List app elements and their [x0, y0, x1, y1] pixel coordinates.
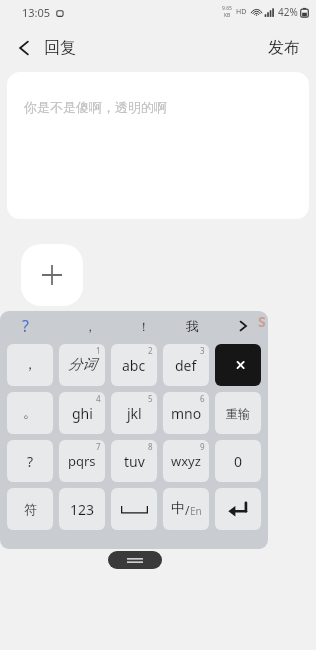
button[interactable]: 分词 — [59, 344, 105, 386]
button[interactable]: Backspace — [215, 344, 261, 386]
button[interactable]: 中 — [163, 488, 209, 530]
staticText: 我 — [186, 318, 199, 334]
button[interactable]: abc — [111, 344, 157, 386]
button[interactable]: ? — [22, 315, 29, 337]
staticText: 3 — [200, 345, 205, 356]
staticText: ? — [27, 452, 34, 471]
staticText: ? — [22, 315, 29, 337]
staticText: 123 — [70, 500, 95, 519]
button[interactable]: wxyz — [163, 440, 209, 482]
button[interactable]: 重输 — [215, 392, 261, 434]
button[interactable]: Back — [0, 30, 90, 66]
button[interactable]: Space — [111, 488, 157, 530]
button[interactable]: ghi — [59, 392, 105, 434]
staticText: S — [258, 312, 266, 331]
button[interactable]: 0 — [215, 440, 261, 482]
button[interactable]: 你是不是傻啊，透明的啊 — [7, 72, 309, 219]
button[interactable]: 符 — [7, 488, 53, 530]
staticText: ghi — [72, 404, 93, 423]
button[interactable]: Add attachment — [21, 244, 83, 306]
staticText: 6 — [200, 393, 205, 404]
staticText: 8 — [148, 441, 153, 452]
staticText: wxyz — [171, 452, 201, 470]
staticText: 1 — [96, 345, 101, 356]
staticText: def — [175, 356, 197, 375]
button[interactable]: More candidates — [236, 319, 250, 333]
staticText: 7 — [96, 441, 101, 452]
staticText: 重输 — [226, 406, 250, 421]
staticText: 9 — [200, 441, 205, 452]
staticText: 2 — [148, 345, 153, 356]
staticText: 4 — [96, 393, 101, 404]
staticText: 42% — [278, 5, 298, 19]
button[interactable]: 。 — [7, 392, 53, 434]
button[interactable]: mno — [163, 392, 209, 434]
staticText: abc — [122, 356, 146, 375]
button[interactable]: ， — [84, 319, 96, 334]
button[interactable]: ? — [7, 440, 53, 482]
staticText: 。 — [23, 404, 37, 422]
staticText: jkl — [127, 404, 142, 423]
button[interactable]: Enter — [215, 488, 261, 530]
staticText: mno — [171, 404, 202, 423]
button[interactable]: tuv — [111, 440, 157, 482]
staticText: 符 — [24, 501, 37, 517]
other: Back — [16, 40, 32, 56]
button[interactable]: ！ — [138, 319, 150, 334]
staticText: HD — [236, 7, 247, 17]
button[interactable]: pqrs — [59, 440, 105, 482]
button[interactable]: def — [163, 344, 209, 386]
staticText: 5 — [148, 393, 153, 404]
button[interactable]: jkl — [111, 392, 157, 434]
staticText: 中 — [171, 500, 185, 518]
staticText: / — [185, 502, 190, 518]
staticText: tuv — [124, 452, 145, 471]
staticText: 分词 — [68, 356, 96, 374]
button[interactable]: 我 — [186, 318, 199, 334]
staticText: 0 — [234, 452, 243, 471]
staticText: KB — [224, 12, 231, 19]
staticText: 发布 — [268, 38, 300, 58]
staticText: En — [190, 504, 202, 518]
button[interactable]: ， — [7, 344, 53, 386]
button[interactable]: 发布 — [252, 30, 316, 66]
staticText: 你是不是傻啊，透明的啊 — [24, 99, 167, 115]
staticText: 9.65 — [222, 5, 232, 12]
button[interactable]: 123 — [59, 488, 105, 530]
staticText: ， — [23, 356, 37, 374]
button[interactable]: Home — [108, 551, 162, 569]
staticText: 13:05 — [22, 5, 51, 20]
staticText: pqrs — [68, 452, 96, 470]
staticText: 回复 — [44, 38, 76, 58]
staticText: ， — [84, 319, 96, 334]
staticText: ！ — [138, 319, 150, 334]
